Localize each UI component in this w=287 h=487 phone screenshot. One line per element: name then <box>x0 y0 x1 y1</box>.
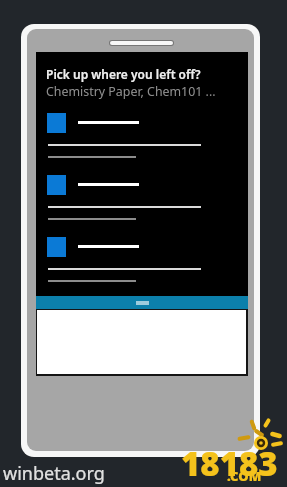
staticText: Pick up where you left off? <box>46 66 201 82</box>
button[interactable]: Open note <box>36 237 248 289</box>
button[interactable]: Open note <box>36 175 248 227</box>
staticText: winbeta.org <box>3 461 105 486</box>
button[interactable]: Open note <box>36 113 248 165</box>
button[interactable]: More options <box>36 296 248 309</box>
staticText: 18183 <box>181 441 278 486</box>
staticText: Chemistry Paper, Chem101 ... <box>46 83 216 100</box>
staticText: .COM <box>227 467 262 485</box>
